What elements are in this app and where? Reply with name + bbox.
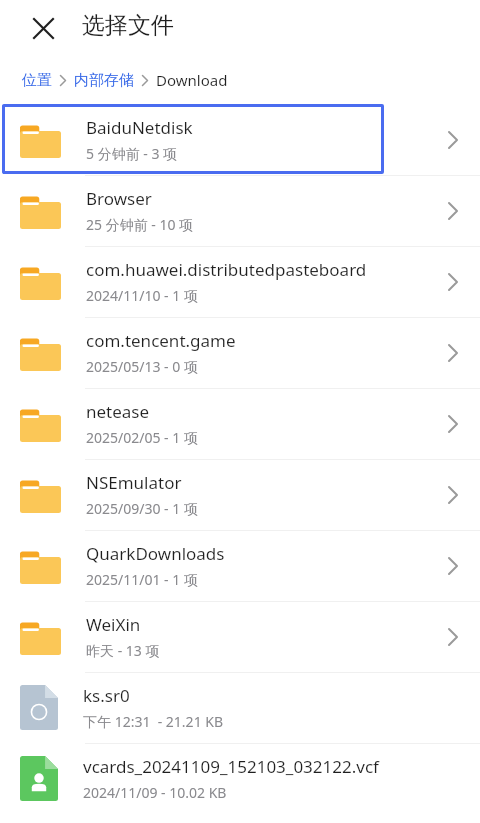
staticText: 位置 xyxy=(22,71,52,90)
staticText: NSEmulator xyxy=(86,471,182,494)
staticText: 2024/11/09 - 10.02 KB xyxy=(83,783,227,802)
staticText: 2025/11/01 - 1 项 xyxy=(86,570,198,589)
staticText: 2025/05/13 - 0 项 xyxy=(86,357,198,376)
button[interactable]: QuarkDownloads xyxy=(0,530,480,601)
staticText: 2024/11/10 - 1 项 xyxy=(86,286,198,305)
staticText: 25 分钟前 - 10 项 xyxy=(86,215,194,234)
button[interactable]: com.tencent.game xyxy=(0,317,480,388)
staticText: ks.sr0 xyxy=(83,684,130,707)
staticText: QuarkDownloads xyxy=(86,542,225,565)
staticText: BaiduNetdisk xyxy=(86,116,193,139)
button[interactable]: BaiduNetdisk xyxy=(0,104,480,175)
button[interactable]: com.huawei.distributedpasteboard xyxy=(0,246,480,317)
staticText: 2025/02/05 - 1 项 xyxy=(86,428,198,447)
button[interactable]: WeiXin xyxy=(0,601,480,672)
staticText: netease xyxy=(86,400,150,423)
staticText: WeiXin xyxy=(86,613,141,636)
staticText: 下午 12:31 - 21.21 KB xyxy=(83,712,224,731)
button[interactable]: vcards_20241109_152103_032122.vcf xyxy=(0,743,480,814)
button[interactable]: 位置 xyxy=(22,71,52,90)
staticText: 昨天 - 13 项 xyxy=(86,641,160,660)
staticText: com.huawei.distributedpasteboard xyxy=(86,258,367,281)
button[interactable]: ks.sr0 xyxy=(0,672,480,743)
staticText: vcards_20241109_152103_032122.vcf xyxy=(83,755,379,778)
button[interactable]: netease xyxy=(0,388,480,459)
button[interactable]: Browser xyxy=(0,175,480,246)
button[interactable]: NSEmulator xyxy=(0,459,480,530)
staticText: Browser xyxy=(86,187,152,210)
button[interactable]: Close xyxy=(25,10,61,46)
staticText: 2025/09/30 - 1 项 xyxy=(86,499,198,518)
staticText: com.tencent.game xyxy=(86,329,236,352)
staticText: 选择文件 xyxy=(82,11,174,40)
staticText: 内部存储 xyxy=(74,71,134,90)
staticText: 5 分钟前 - 3 项 xyxy=(86,144,178,163)
staticText: Download xyxy=(156,70,228,90)
button[interactable]: 内部存储 xyxy=(74,71,134,90)
